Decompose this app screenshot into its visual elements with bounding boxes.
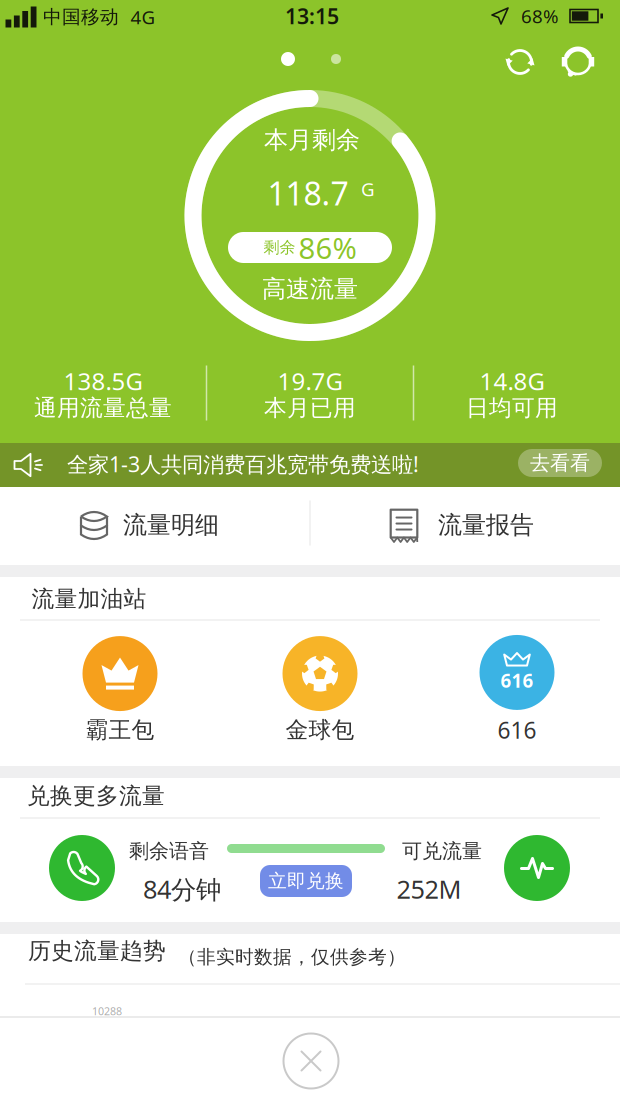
staticText: 118.7 (267, 172, 348, 214)
staticText: 68% (521, 4, 559, 28)
staticText: 剩余语音 (129, 839, 209, 863)
button[interactable]: 全家1-3人共同消费百兆宽带免费送啦! (0, 443, 620, 487)
staticText: 流量报告 (438, 510, 534, 540)
staticText: 兑换更多流量 (27, 782, 165, 810)
staticText: 616 (500, 668, 533, 693)
staticText: 84分钟 (143, 872, 221, 906)
staticText: 本月剩余 (264, 125, 360, 155)
staticText: 剩余 (263, 238, 295, 257)
staticText: 138.5G (63, 365, 142, 397)
staticText: 流量明细 (123, 510, 219, 540)
staticText: 全家1-3人共同消费百兆宽带免费送啦! (67, 450, 419, 478)
staticText: 4G (130, 5, 155, 29)
button[interactable]: 可兑流量 (504, 835, 570, 901)
button[interactable]: 客服 (561, 45, 595, 78)
staticText: 本月已用 (264, 394, 356, 422)
staticText: G (361, 177, 375, 201)
staticText: 通用流量总量 (34, 394, 172, 422)
staticText: 立即兑换 (268, 869, 344, 892)
staticText: 流量加油站 (31, 585, 146, 613)
button[interactable]: 剩余语音 (49, 835, 115, 901)
staticText: 86% (298, 228, 356, 267)
staticText: 14.8G (479, 365, 544, 397)
button[interactable]: 616 (479, 635, 554, 745)
staticText: 高速流量 (262, 274, 358, 304)
staticText: 金球包 (285, 716, 354, 744)
staticText: 10288 (92, 1004, 122, 1018)
staticText: 13:15 (285, 2, 339, 30)
button[interactable]: 刷新 (505, 47, 535, 77)
staticText: 去看看 (530, 451, 590, 475)
button[interactable]: 立即兑换 (260, 865, 352, 897)
staticText: 19.7G (277, 365, 342, 397)
button[interactable]: 流量报告 (310, 487, 620, 565)
button[interactable]: 霸王包 (82, 636, 157, 744)
staticText: 历史流量趋势 (28, 937, 166, 965)
staticText: 616 (497, 715, 536, 745)
staticText: 中国移动 (43, 5, 119, 28)
staticText: 可兑流量 (402, 839, 482, 863)
staticText: 霸王包 (85, 716, 154, 744)
staticText: （非实时数据，仅供参考） (178, 945, 406, 968)
staticText: 日均可用 (466, 394, 558, 422)
button[interactable]: 金球包 (282, 636, 357, 744)
button[interactable]: 流量明细 (0, 487, 310, 565)
button[interactable]: 关闭 (282, 1032, 340, 1090)
staticText: 252M (396, 872, 461, 906)
